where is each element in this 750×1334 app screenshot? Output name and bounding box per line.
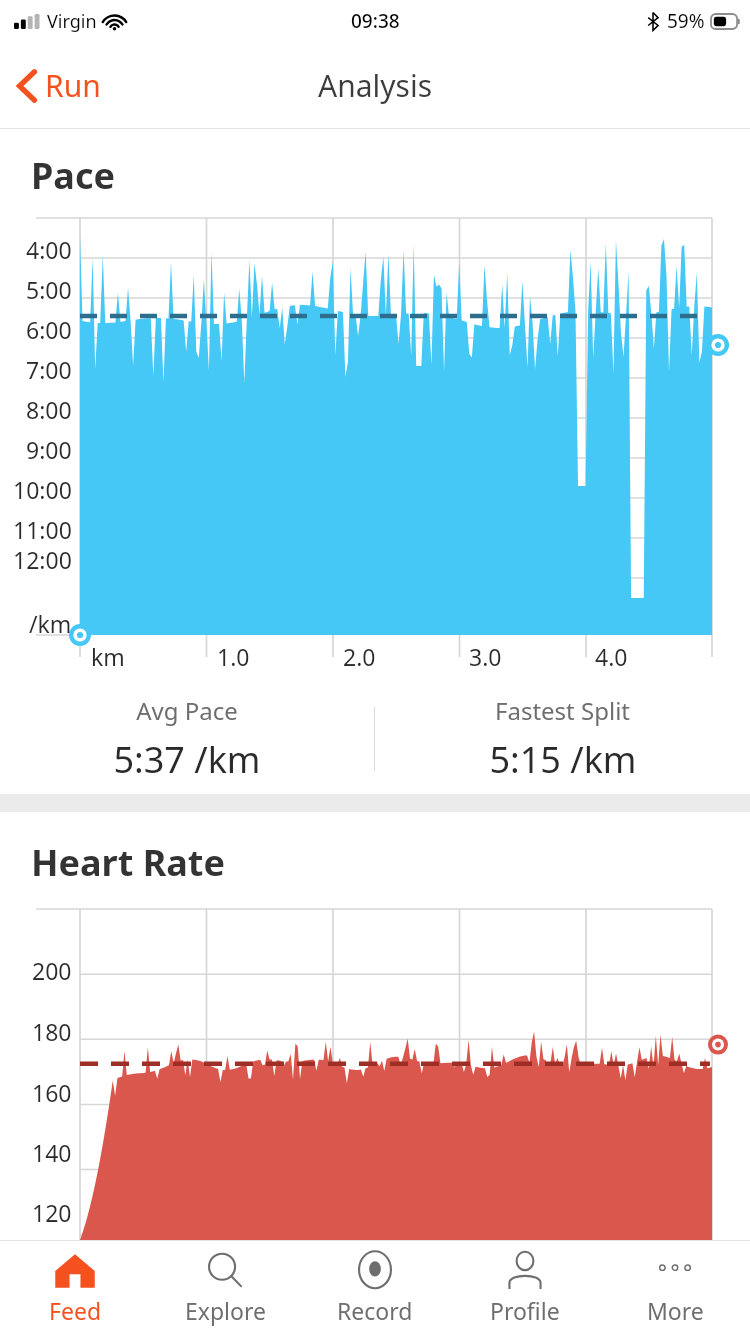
- staticText: Heart Rate: [31, 838, 225, 887]
- staticText: Fastest Split: [495, 694, 630, 727]
- button[interactable]: Explore: [150, 1241, 300, 1334]
- staticText: 5:15 /km: [489, 735, 637, 784]
- staticText: 5:37 /km: [113, 735, 261, 784]
- staticText: Explore: [185, 1295, 266, 1326]
- staticText: Virgin: [47, 9, 97, 34]
- button[interactable]: Fastest Split: [375, 684, 750, 794]
- staticText: 7:00: [26, 354, 72, 385]
- staticText: 09:38: [351, 8, 400, 34]
- staticText: 160: [32, 1077, 72, 1108]
- staticText: Record: [337, 1295, 413, 1326]
- staticText: 11:00: [13, 514, 72, 545]
- staticText: 5:00: [26, 274, 72, 305]
- staticText: 9:00: [26, 434, 72, 465]
- staticText: Profile: [490, 1295, 560, 1326]
- staticText: 200: [32, 955, 72, 986]
- staticText: Feed: [49, 1295, 102, 1326]
- staticText: 3.0: [469, 641, 502, 672]
- staticText: 120: [32, 1197, 72, 1228]
- button[interactable]: Avg Pace: [0, 684, 374, 794]
- staticText: Run: [45, 65, 101, 106]
- staticText: 12:00: [13, 544, 72, 575]
- staticText: Avg Pace: [136, 694, 238, 727]
- button[interactable]: Back: [8, 57, 109, 114]
- staticText: 140: [32, 1137, 72, 1168]
- button[interactable]: More: [600, 1241, 750, 1334]
- staticText: Analysis: [318, 65, 433, 106]
- staticText: 2.0: [343, 641, 376, 672]
- staticText: 180: [32, 1016, 72, 1047]
- staticText: 1.0: [217, 641, 250, 672]
- button[interactable]: Record: [300, 1241, 450, 1334]
- button[interactable]: Profile: [450, 1241, 600, 1334]
- staticText: 4:00: [26, 234, 72, 265]
- staticText: /km: [29, 608, 72, 639]
- other: Back: [16, 69, 38, 103]
- staticText: 6:00: [26, 314, 72, 345]
- staticText: 8:00: [26, 394, 72, 425]
- button[interactable]: Feed: [0, 1241, 150, 1334]
- staticText: 4.0: [595, 641, 628, 672]
- staticText: 10:00: [13, 474, 72, 505]
- staticText: km: [91, 641, 125, 672]
- staticText: More: [647, 1295, 704, 1326]
- staticText: Pace: [31, 151, 115, 200]
- staticText: 59%: [667, 8, 705, 34]
